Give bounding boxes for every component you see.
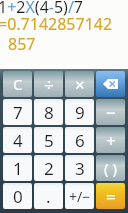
staticText: 2 — [44, 157, 54, 180]
button[interactable]: × — [65, 71, 94, 97]
button[interactable]: 3 — [65, 155, 94, 181]
button[interactable]: Backspace — [96, 71, 125, 97]
staticText: 857 — [8, 33, 36, 55]
button[interactable]: 8 — [34, 99, 63, 125]
staticText: 9 — [75, 101, 85, 124]
staticText: 4 — [13, 129, 23, 152]
button[interactable]: 9 — [65, 99, 94, 125]
staticText: × — [75, 73, 85, 96]
staticText: + — [106, 129, 116, 152]
staticText: 7 — [13, 101, 23, 124]
button[interactable]: = — [96, 183, 125, 209]
staticText: 1+2X(4-5)/7 — [0, 0, 83, 18]
button[interactable]: . — [34, 183, 63, 209]
button[interactable]: 2 — [34, 155, 63, 181]
button[interactable]: − — [96, 99, 125, 125]
staticText: 8 — [44, 101, 54, 124]
button[interactable]: C — [3, 71, 32, 97]
staticText: 5 — [44, 129, 54, 152]
button[interactable]: 1 — [3, 155, 32, 181]
staticText: C — [13, 74, 23, 94]
staticText: +/− — [69, 187, 91, 206]
button[interactable]: 0 — [3, 183, 32, 209]
button[interactable]: +/− — [65, 183, 94, 209]
staticText: ( ) — [104, 158, 117, 178]
button[interactable]: ( ) — [96, 155, 125, 181]
staticText: ÷ — [44, 73, 54, 96]
button[interactable]: 4 — [3, 127, 32, 153]
staticText: 6 — [75, 129, 85, 152]
staticText: . — [46, 185, 51, 208]
button[interactable]: 5 — [34, 127, 63, 153]
staticText: 0 — [13, 185, 23, 208]
button[interactable]: 6 — [65, 127, 94, 153]
staticText: 3 — [75, 157, 85, 180]
button[interactable]: ÷ — [34, 71, 63, 97]
staticText: = — [106, 185, 116, 208]
staticText: − — [106, 101, 116, 124]
button[interactable]: 7 — [3, 99, 32, 125]
staticText: 1 — [13, 157, 23, 180]
staticText: =0.7142857142 — [0, 13, 113, 35]
button[interactable]: + — [96, 127, 125, 153]
